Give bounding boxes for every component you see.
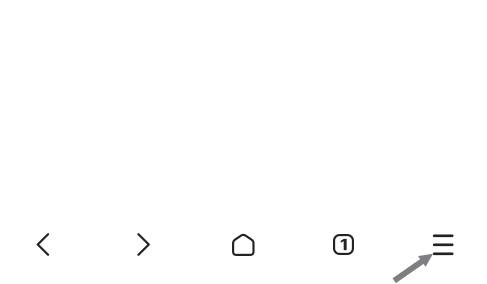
button[interactable]: Menu [409, 217, 477, 271]
button[interactable]: Forward [110, 217, 178, 271]
button[interactable]: Home [209, 217, 277, 271]
button[interactable]: Back [9, 217, 77, 271]
button[interactable]: Tabs [309, 217, 377, 271]
